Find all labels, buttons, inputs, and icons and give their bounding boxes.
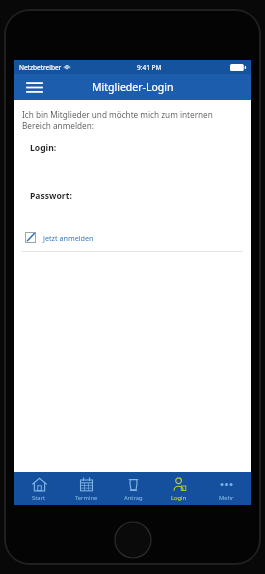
button[interactable]: Start (17, 472, 61, 505)
button[interactable]: Home (114, 521, 152, 559)
staticText: Passwort: (30, 190, 72, 202)
staticText: Start (32, 494, 46, 502)
staticText: Netzbetreiber (19, 63, 62, 72)
staticText: Login: (30, 142, 57, 154)
button[interactable]: Mehr (204, 472, 248, 505)
staticText: Antrag (124, 494, 143, 502)
button[interactable]: Jetzt anmelden (25, 232, 94, 243)
button[interactable]: Menu (22, 76, 46, 98)
button[interactable]: Antrag (111, 472, 155, 505)
staticText: 9:41 PM (137, 63, 162, 72)
staticText: Mitglieder-Login (92, 80, 174, 94)
staticText: Jetzt anmelden (43, 233, 94, 243)
button[interactable]: Termine (64, 472, 108, 505)
button[interactable]: Login (157, 472, 201, 505)
staticText: Termine (75, 494, 98, 502)
staticText: Ich bin Mitglieder und möchte mich zum i… (22, 109, 213, 131)
staticText: Login (171, 494, 187, 502)
staticText: Mehr (219, 494, 234, 502)
